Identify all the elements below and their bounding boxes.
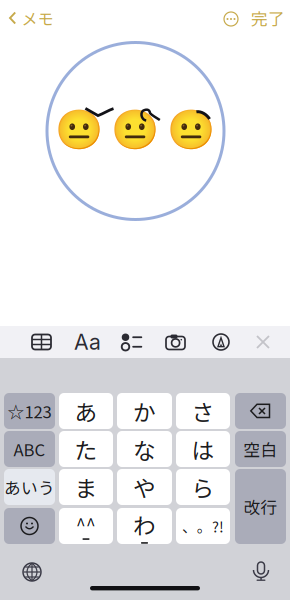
button[interactable]: あいう xyxy=(4,469,55,505)
button[interactable]: た xyxy=(59,431,113,467)
staticText: ま xyxy=(74,471,97,503)
staticText: 😐 xyxy=(167,107,215,152)
staticText: 😐 xyxy=(111,107,159,152)
button[interactable]: メモ xyxy=(9,10,55,26)
staticText: な xyxy=(133,433,156,465)
staticText: あ xyxy=(74,395,97,427)
staticText: 完了 xyxy=(251,6,285,30)
button[interactable]: Emoji xyxy=(4,508,55,544)
staticText: や xyxy=(133,471,156,503)
button[interactable]: ま xyxy=(59,469,113,505)
staticText: 空白 xyxy=(243,437,277,461)
button[interactable]: More xyxy=(223,11,239,27)
button[interactable]: Format xyxy=(77,331,98,353)
button[interactable]: Switch keyboard xyxy=(23,563,41,581)
button[interactable]: Camera xyxy=(166,335,185,349)
staticText: あいう xyxy=(4,475,55,499)
staticText: 😐 xyxy=(55,107,103,152)
staticText: 改行 xyxy=(243,494,277,518)
button[interactable]: Checklist xyxy=(122,334,142,350)
button[interactable]: ABC xyxy=(4,431,55,467)
staticText: ABC xyxy=(13,437,45,461)
button[interactable]: ^^ xyxy=(59,508,113,544)
button[interactable]: 改行 xyxy=(235,469,286,544)
button[interactable]: か xyxy=(117,393,172,429)
button[interactable]: ら xyxy=(176,469,230,505)
staticText: た xyxy=(74,433,97,465)
staticText: ☆123 xyxy=(7,399,51,423)
staticText: わ xyxy=(133,508,156,541)
staticText: 、。?! xyxy=(182,515,224,537)
staticText: ^^ xyxy=(76,512,96,537)
button[interactable]: や xyxy=(117,469,172,505)
button[interactable]: 完了 xyxy=(251,10,281,26)
staticText: ら xyxy=(191,471,214,503)
button[interactable]: な xyxy=(117,431,172,467)
button[interactable]: わ xyxy=(117,508,172,544)
button[interactable]: Table xyxy=(32,334,51,350)
button[interactable]: あ xyxy=(59,393,113,429)
button[interactable]: は xyxy=(176,431,230,467)
button[interactable]: Markup xyxy=(213,334,229,350)
button[interactable]: Dictation xyxy=(252,562,270,581)
staticText: Aa xyxy=(74,329,101,355)
staticText: は xyxy=(191,433,214,465)
button[interactable]: 、。?! xyxy=(176,508,230,544)
button[interactable]: Delete xyxy=(235,393,286,429)
staticText: メモ xyxy=(21,6,53,30)
staticText: さ xyxy=(191,395,214,427)
button[interactable]: 空白 xyxy=(235,431,286,467)
button[interactable]: ☆123 xyxy=(4,393,55,429)
staticText: か xyxy=(133,395,156,427)
button[interactable]: さ xyxy=(176,393,230,429)
button[interactable]: Close xyxy=(256,335,270,349)
